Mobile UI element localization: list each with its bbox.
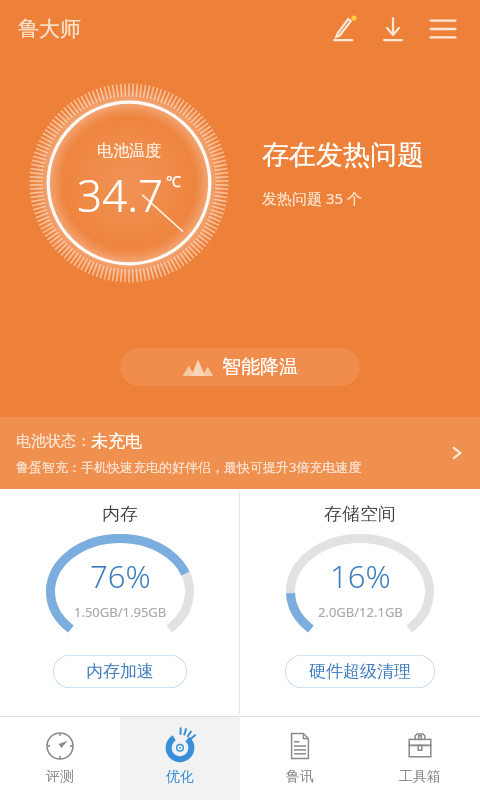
staticText: 34.7 (77, 165, 164, 225)
staticText: 存在发热问题 (262, 138, 424, 172)
staticText: 鲁大师 (18, 16, 81, 42)
button[interactable]: 电池状态： (0, 417, 480, 489)
button[interactable]: Download (372, 8, 414, 50)
button[interactable]: 鲁讯 (240, 717, 360, 800)
staticText: 电池状态： (16, 432, 91, 451)
staticText: 76% (90, 555, 151, 597)
button[interactable]: Edit (322, 8, 364, 50)
staticText: 1.50GB/1.95GB (74, 603, 167, 621)
staticText: 发热问题 35 个 (262, 188, 362, 208)
staticText: 智能降温 (222, 355, 298, 379)
staticText: 电池温度 (97, 141, 161, 161)
staticText: 存储空间 (324, 503, 396, 526)
staticText: 硬件超级清理 (309, 661, 411, 682)
staticText: 2.0GB/12.1GB (318, 603, 403, 621)
button[interactable]: Menu (422, 8, 464, 50)
button[interactable]: 内存加速 (53, 655, 187, 688)
staticText: 鲁讯 (286, 768, 314, 786)
button[interactable]: 智能降温 (120, 348, 360, 386)
staticText: 鲁蛋智充：手机快速充电的好伴侣，最快可提升3倍充电速度 (16, 458, 362, 476)
staticText: ℃ (166, 171, 181, 191)
button[interactable]: 工具箱 (360, 717, 480, 800)
staticText: 内存 (102, 503, 138, 526)
button[interactable]: 优化 (120, 717, 240, 800)
staticText: 评测 (46, 768, 74, 786)
staticText: 内存加速 (86, 661, 154, 682)
button[interactable]: 硬件超级清理 (285, 655, 435, 688)
staticText: 优化 (166, 768, 194, 786)
staticText: 工具箱 (399, 768, 441, 786)
staticText: 16% (330, 555, 391, 597)
button[interactable]: 评测 (0, 717, 120, 800)
staticText: 未充电 (91, 431, 142, 452)
